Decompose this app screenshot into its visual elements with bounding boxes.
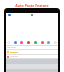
button[interactable]: Drive [41, 41, 44, 44]
button[interactable] [6, 46, 58, 49]
button[interactable]: Copy [54, 41, 57, 44]
button[interactable]: Messages [14, 41, 17, 44]
button[interactable]: More [7, 41, 10, 44]
button[interactable] [6, 55, 58, 58]
staticText: Auto Paste Feature [15, 3, 49, 8]
button[interactable]: Photos [20, 41, 23, 44]
button[interactable]: Gmail [27, 41, 30, 44]
button[interactable]: WhatsApp [34, 41, 37, 44]
button[interactable] [6, 50, 58, 54]
button[interactable]: Chat [47, 41, 50, 44]
